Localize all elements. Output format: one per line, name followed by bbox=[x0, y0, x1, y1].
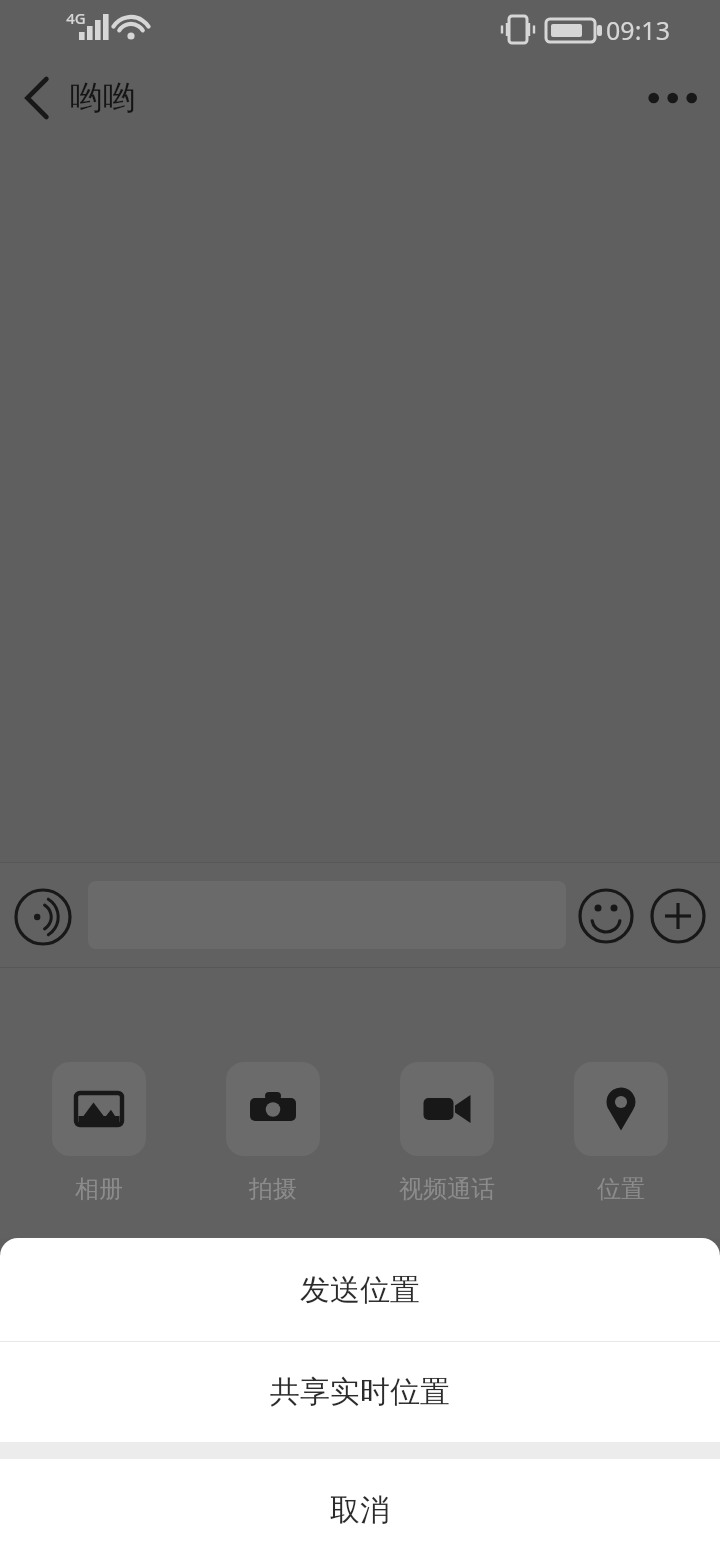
button[interactable]: 发送位置 bbox=[0, 1238, 720, 1341]
staticText: 相册 bbox=[75, 1174, 123, 1204]
staticText: 4G bbox=[66, 8, 86, 28]
staticText: 取消 bbox=[330, 1491, 390, 1529]
staticText: 位置 bbox=[597, 1174, 645, 1204]
button[interactable]: More options bbox=[634, 52, 720, 144]
button[interactable]: Back bbox=[0, 52, 70, 144]
staticText: 发送位置 bbox=[300, 1271, 420, 1309]
button[interactable]: 位置 bbox=[546, 1062, 696, 1204]
staticText: 09:13 bbox=[606, 13, 670, 47]
button[interactable]: 相册 bbox=[24, 1062, 174, 1204]
button[interactable]: Emoji bbox=[578, 888, 634, 944]
button[interactable]: 视频通话 bbox=[372, 1062, 522, 1204]
staticText: 共享实时位置 bbox=[270, 1373, 450, 1411]
button[interactable]: Voice message bbox=[14, 888, 72, 946]
staticText: 拍摄 bbox=[249, 1174, 297, 1204]
button[interactable]: More actions bbox=[650, 888, 706, 944]
button[interactable]: 共享实时位置 bbox=[0, 1342, 720, 1442]
staticText: 哟哟 bbox=[70, 77, 136, 119]
button[interactable]: 取消 bbox=[0, 1459, 720, 1560]
button[interactable]: 拍摄 bbox=[198, 1062, 348, 1204]
staticText: 视频通话 bbox=[399, 1174, 495, 1204]
